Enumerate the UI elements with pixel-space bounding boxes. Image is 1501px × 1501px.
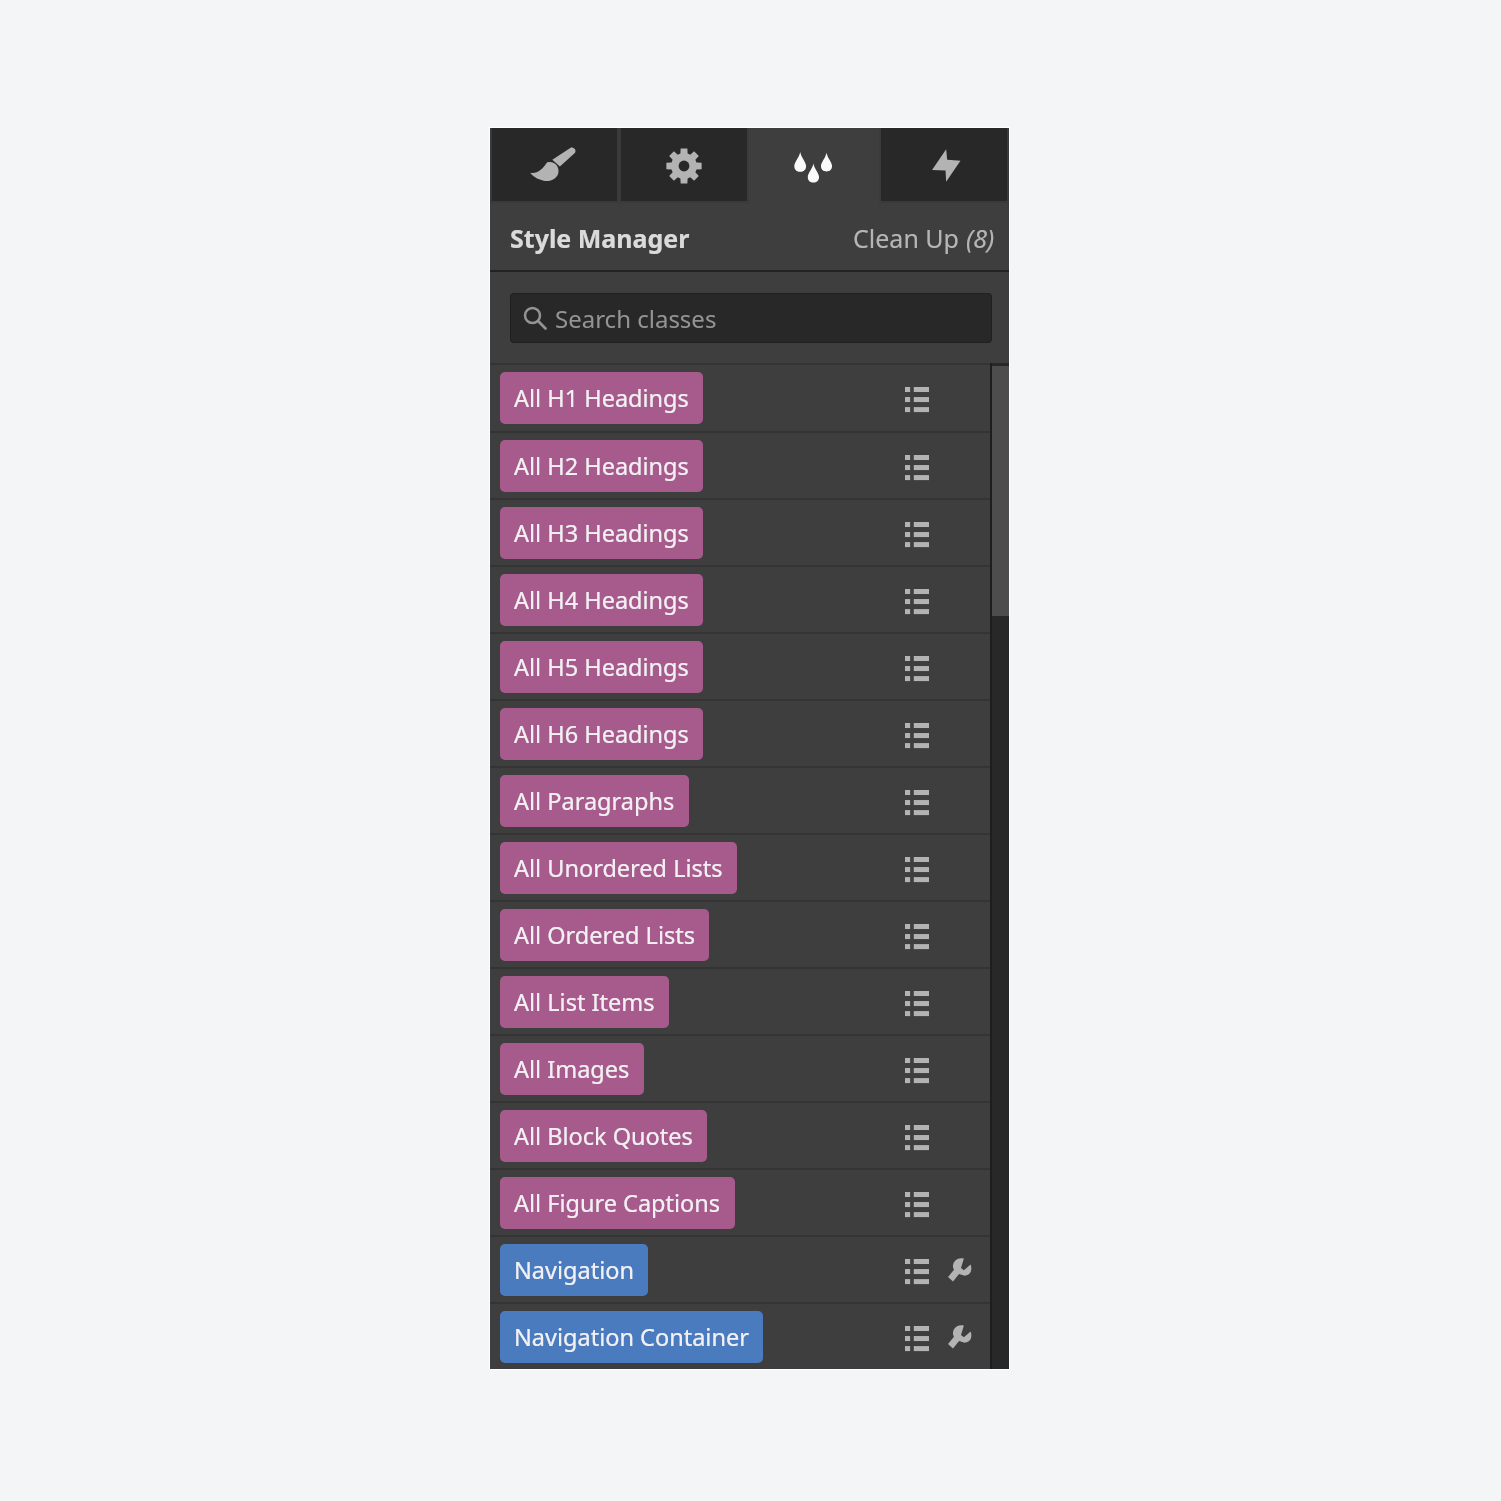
button[interactable]: All Unordered Lists xyxy=(500,842,737,894)
button[interactable]: Effects xyxy=(879,128,1009,203)
button[interactable]: Clean Up xyxy=(853,215,995,261)
button[interactable]: Show elements xyxy=(895,1103,939,1168)
staticText: Navigation xyxy=(514,1254,634,1286)
button[interactable]: All H1 Headings xyxy=(500,372,703,424)
button[interactable]: Show elements xyxy=(895,567,939,632)
button[interactable]: All H3 Headings xyxy=(500,507,703,559)
staticText: All Paragraphs xyxy=(514,785,675,817)
button[interactable]: Edit style xyxy=(939,1237,983,1302)
staticText: Style Manager xyxy=(510,221,690,255)
button[interactable]: Navigation xyxy=(490,1237,990,1302)
button[interactable]: All H1 Headings xyxy=(490,365,990,431)
button[interactable]: All List Items xyxy=(500,976,669,1028)
staticText: (8) xyxy=(966,221,995,255)
button[interactable]: Show elements xyxy=(895,634,939,699)
button[interactable]: All H6 Headings xyxy=(500,708,703,760)
button[interactable]: All Ordered Lists xyxy=(490,902,990,967)
staticText: All H3 Headings xyxy=(514,517,689,549)
button[interactable]: Show elements xyxy=(895,969,939,1034)
button[interactable]: Show elements xyxy=(895,500,939,565)
button[interactable]: Show elements xyxy=(895,1170,939,1235)
button[interactable]: Navigation Container xyxy=(500,1311,763,1363)
staticText: All Images xyxy=(514,1053,630,1085)
button[interactable]: All Unordered Lists xyxy=(490,835,990,900)
button[interactable]: Show elements xyxy=(895,433,939,498)
button[interactable]: All H5 Headings xyxy=(490,634,990,699)
button[interactable]: Navigation Container xyxy=(490,1304,990,1369)
button[interactable]: All H6 Headings xyxy=(490,701,990,766)
staticText: All List Items xyxy=(514,986,655,1018)
button[interactable]: Show elements xyxy=(895,701,939,766)
staticText: Navigation Container xyxy=(514,1321,749,1353)
button[interactable]: All H4 Headings xyxy=(500,574,703,626)
staticText: Clean Up xyxy=(853,221,966,255)
staticText: All Figure Captions xyxy=(514,1187,721,1219)
button[interactable]: Show elements xyxy=(895,365,939,431)
button[interactable]: All Paragraphs xyxy=(500,775,689,827)
button[interactable]: Show elements xyxy=(895,1304,939,1369)
button[interactable]: All Block Quotes xyxy=(500,1110,707,1162)
button[interactable]: Show elements xyxy=(895,768,939,833)
button[interactable]: All Ordered Lists xyxy=(500,909,709,961)
button[interactable]: Brush xyxy=(490,128,619,203)
button[interactable]: All H4 Headings xyxy=(490,567,990,632)
staticText: All H6 Headings xyxy=(514,718,689,750)
staticText: All H1 Headings xyxy=(514,382,689,414)
button[interactable]: Styles xyxy=(749,128,879,203)
button[interactable]: All H3 Headings xyxy=(490,500,990,565)
button[interactable]: All H5 Headings xyxy=(500,641,703,693)
staticText: All Block Quotes xyxy=(514,1120,693,1152)
button[interactable]: Show elements xyxy=(895,1036,939,1101)
button[interactable]: All Block Quotes xyxy=(490,1103,990,1168)
staticText: All Unordered Lists xyxy=(514,852,723,884)
button[interactable]: Settings xyxy=(619,128,749,203)
button[interactable]: All Images xyxy=(490,1036,990,1101)
button[interactable]: All Paragraphs xyxy=(490,768,990,833)
button[interactable]: Show elements xyxy=(895,835,939,900)
button[interactable]: All Figure Captions xyxy=(490,1170,990,1235)
button[interactable]: Edit style xyxy=(939,1304,983,1369)
staticText: All Ordered Lists xyxy=(514,919,695,951)
button[interactable]: All H2 Headings xyxy=(490,433,990,498)
button[interactable]: Show elements xyxy=(895,1237,939,1302)
staticText: All H4 Headings xyxy=(514,584,689,616)
button[interactable]: Show elements xyxy=(895,902,939,967)
button[interactable]: All Figure Captions xyxy=(500,1177,735,1229)
button[interactable]: Search classes xyxy=(510,293,992,343)
staticText: Search classes xyxy=(555,302,717,335)
button[interactable]: Navigation xyxy=(500,1244,648,1296)
staticText: All H5 Headings xyxy=(514,651,689,683)
button[interactable]: All H2 Headings xyxy=(500,440,703,492)
button[interactable]: All Images xyxy=(500,1043,644,1095)
staticText: All H2 Headings xyxy=(514,450,689,482)
button[interactable]: All List Items xyxy=(490,969,990,1034)
